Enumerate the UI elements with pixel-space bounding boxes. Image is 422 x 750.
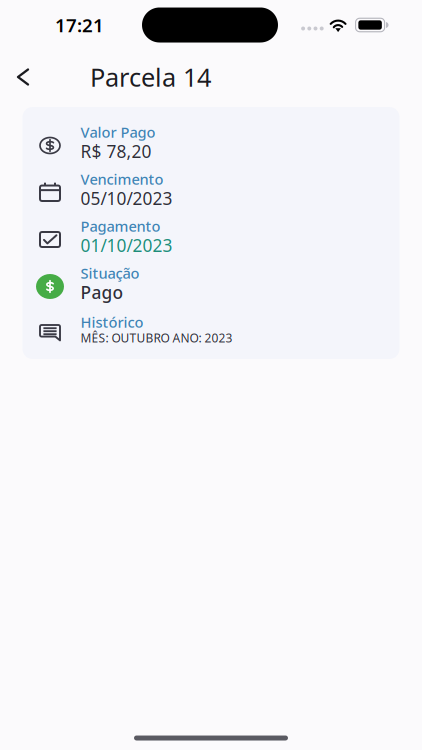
staticText: MÊS: OUTUBRO ANO: 2023 [80,330,232,346]
staticText: Situação [80,263,139,283]
staticText: Histórico [80,312,143,332]
staticText: Valor Pago [80,122,155,142]
staticText: Parcela 14 [90,60,211,94]
staticText: Pago [80,281,123,304]
staticText: R$ 78,20 [80,140,151,163]
staticText: 17:21 [55,13,104,37]
button[interactable]: Back [0,54,46,100]
staticText: Vencimento [80,169,163,189]
staticText: Pagamento [80,216,160,236]
staticText: 01/10/2023 [80,234,172,257]
staticText: 05/10/2023 [80,187,172,210]
